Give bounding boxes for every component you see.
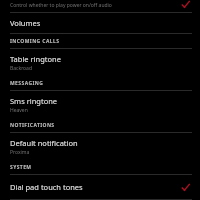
staticText: INCOMING CALLS: [10, 38, 60, 45]
staticText: Heaven: [10, 107, 28, 114]
staticText: Proxima: [10, 149, 30, 156]
staticText: MESSAGING: [10, 80, 44, 87]
staticText: Sms ringtone: [10, 96, 58, 106]
staticText: Volumes: [10, 18, 41, 28]
staticText: NOTIFICATIONS: [10, 122, 55, 129]
button[interactable]: Sms ringtone: [0, 91, 200, 118]
button[interactable]: Dial pad touch tones: [0, 175, 200, 199]
button[interactable]: Default notification: [0, 133, 200, 160]
staticText: Control whether to play power on/off aud…: [10, 2, 112, 9]
staticText: Table ringtone: [10, 54, 61, 64]
staticText: SYSTEM: [10, 164, 32, 171]
button[interactable]: Table ringtone: [0, 49, 200, 76]
other: Dial pad touch tones, checked: [181, 183, 190, 192]
other: Power on off audio, checked: [181, 0, 190, 9]
staticText: Default notification: [10, 138, 78, 148]
staticText: Dial pad touch tones: [10, 182, 83, 192]
button[interactable]: Control whether to play power on/off aud…: [0, 0, 200, 9]
button[interactable]: Volumes: [0, 13, 200, 33]
staticText: Backroad: [10, 65, 32, 72]
